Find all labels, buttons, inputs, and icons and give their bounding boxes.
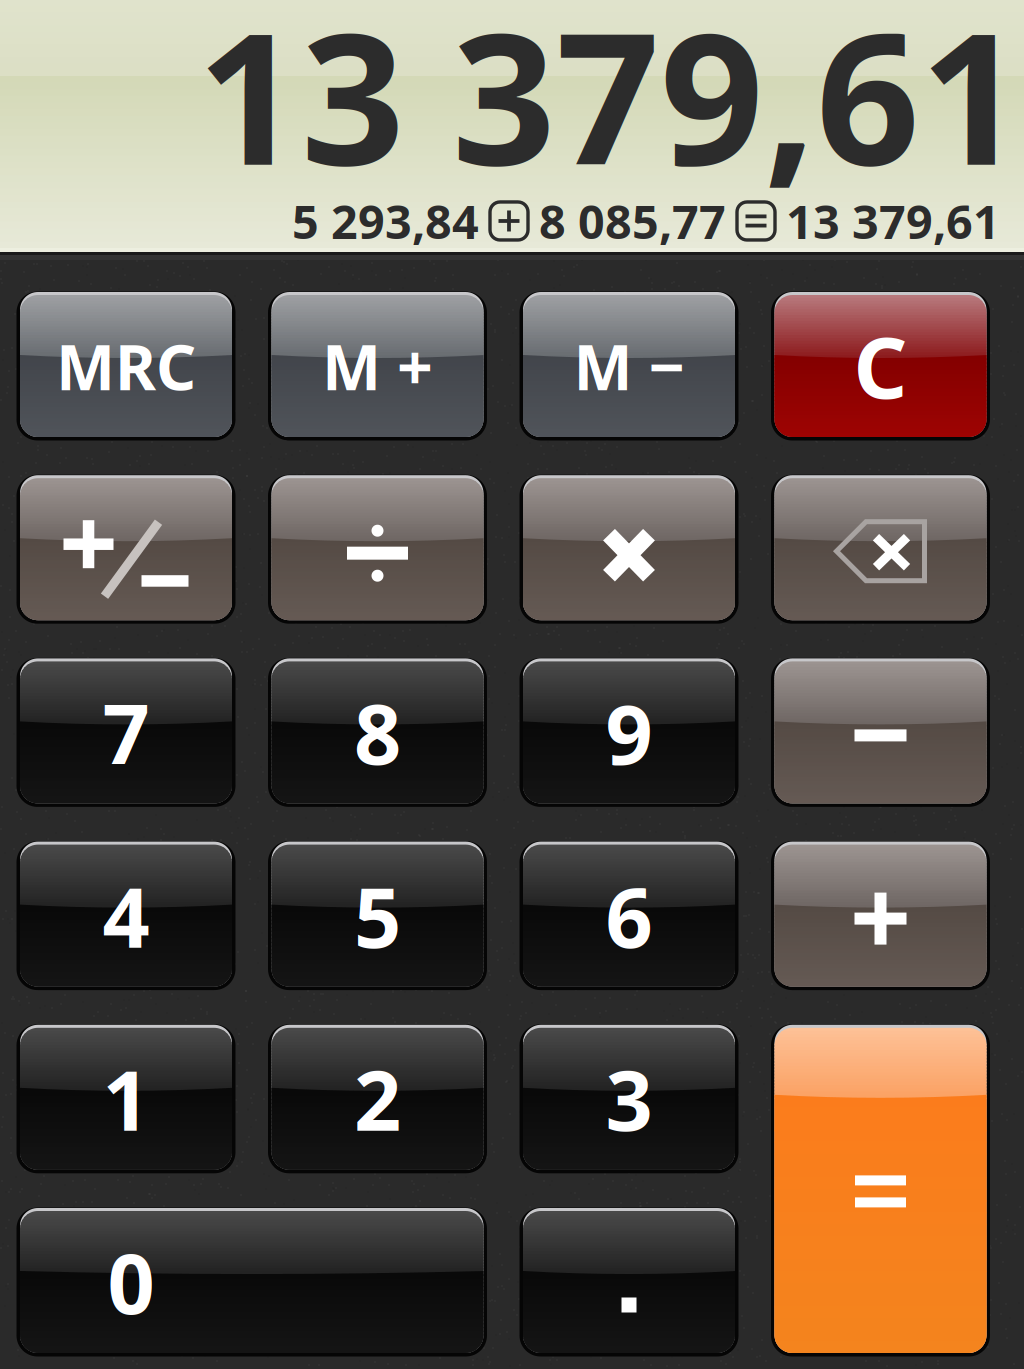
staticText: 8 <box>354 677 401 787</box>
button[interactable]: Plus minus <box>20 478 232 620</box>
button[interactable]: Decimal point <box>523 1211 735 1353</box>
button[interactable]: M − <box>523 295 735 437</box>
staticText: 1 <box>102 1044 149 1154</box>
staticText: 5 <box>354 861 401 970</box>
staticText: 2 <box>354 1044 401 1154</box>
staticText: 13 379,61 <box>786 190 1000 252</box>
button[interactable]: Divide <box>271 478 483 620</box>
button[interactable]: 5 <box>271 845 483 987</box>
button[interactable]: 9 <box>523 661 735 803</box>
button[interactable]: 2 <box>271 1028 483 1170</box>
staticText: 9 <box>605 677 652 787</box>
button[interactable]: Backspace <box>774 478 986 620</box>
staticText: 8 085,77 <box>539 190 726 252</box>
staticText: C <box>853 310 907 422</box>
button[interactable]: 8 <box>271 661 483 803</box>
button[interactable]: 1 <box>20 1028 232 1170</box>
staticText: MRC <box>56 324 196 408</box>
button[interactable]: Multiply <box>523 478 735 620</box>
staticText: 5 293,84 <box>292 190 479 252</box>
button[interactable]: 6 <box>523 845 735 987</box>
button[interactable]: C <box>774 295 986 437</box>
button[interactable]: 0 <box>20 1211 483 1353</box>
button[interactable]: MRC <box>20 295 232 437</box>
staticText: 4 <box>102 861 149 970</box>
staticText: 6 <box>605 861 652 970</box>
staticText: 13 379,61 <box>197 0 1024 215</box>
staticText: 3 <box>605 1044 652 1154</box>
button[interactable]: Minus <box>774 661 986 803</box>
button[interactable]: Plus <box>774 845 986 987</box>
staticText: M − <box>573 324 684 408</box>
staticText: M + <box>322 324 433 408</box>
button[interactable]: 4 <box>20 845 232 987</box>
button[interactable]: M + <box>271 295 483 437</box>
button[interactable]: 7 <box>20 661 232 803</box>
button[interactable]: Equals <box>774 1028 986 1353</box>
button[interactable]: 3 <box>523 1028 735 1170</box>
staticText: 0 <box>107 1227 154 1337</box>
staticText: 7 <box>102 677 149 787</box>
